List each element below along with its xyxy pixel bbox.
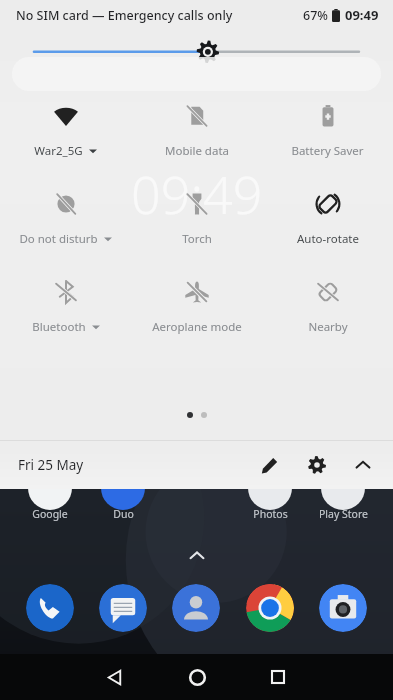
staticText: Auto-rotate <box>297 231 359 247</box>
staticText: Play Store <box>319 507 368 521</box>
staticText: Battery Saver <box>291 143 364 159</box>
button[interactable] <box>28 466 72 510</box>
staticText: Torch <box>182 231 212 247</box>
staticText: Do not disturb <box>19 231 98 247</box>
button[interactable]: Collapse <box>343 445 383 485</box>
staticText: Nearby <box>308 319 348 335</box>
button[interactable]: Settings <box>297 445 337 485</box>
button[interactable]: Recents <box>253 654 303 700</box>
button[interactable]: Phone <box>26 584 74 632</box>
staticText: Mobile data <box>165 143 229 159</box>
staticText: Fri 25 May <box>18 456 84 474</box>
button[interactable]: Chrome <box>246 584 294 632</box>
button[interactable]: Camera <box>319 584 367 632</box>
button[interactable]: Nearby <box>262 275 393 339</box>
staticText: 09:49 <box>345 6 379 24</box>
button[interactable]: Messages <box>99 584 147 632</box>
button[interactable]: Edit <box>249 445 289 485</box>
button[interactable]: Mobile data <box>131 99 262 163</box>
staticText: 67% <box>303 7 328 24</box>
staticText: No SIM card — Emergency calls only <box>16 7 233 24</box>
button[interactable]: All apps <box>181 540 213 572</box>
staticText: 09:49 <box>131 158 263 229</box>
button[interactable]: Contacts <box>172 584 220 632</box>
button[interactable] <box>101 466 145 510</box>
button[interactable]: Back <box>90 654 140 700</box>
button[interactable]: Brightness <box>0 41 393 81</box>
staticText: Bluetooth <box>32 319 86 335</box>
button[interactable]: Do not disturb <box>0 187 131 251</box>
button[interactable]: Bluetooth <box>0 275 131 339</box>
button[interactable]: War2_5G <box>0 99 131 163</box>
staticText: Photos <box>253 507 288 521</box>
button[interactable]: Battery Saver <box>262 99 393 163</box>
button[interactable] <box>248 466 292 510</box>
staticText: Aeroplane mode <box>152 319 242 335</box>
button[interactable]: Home <box>169 654 225 700</box>
button[interactable]: Auto-rotate <box>262 187 393 251</box>
button[interactable] <box>321 466 365 510</box>
staticText: War2_5G <box>34 143 83 159</box>
staticText: Duo <box>113 507 134 521</box>
button[interactable]: Torch <box>131 187 262 251</box>
staticText: Google <box>32 507 68 521</box>
button[interactable]: Aeroplane mode <box>131 275 262 339</box>
